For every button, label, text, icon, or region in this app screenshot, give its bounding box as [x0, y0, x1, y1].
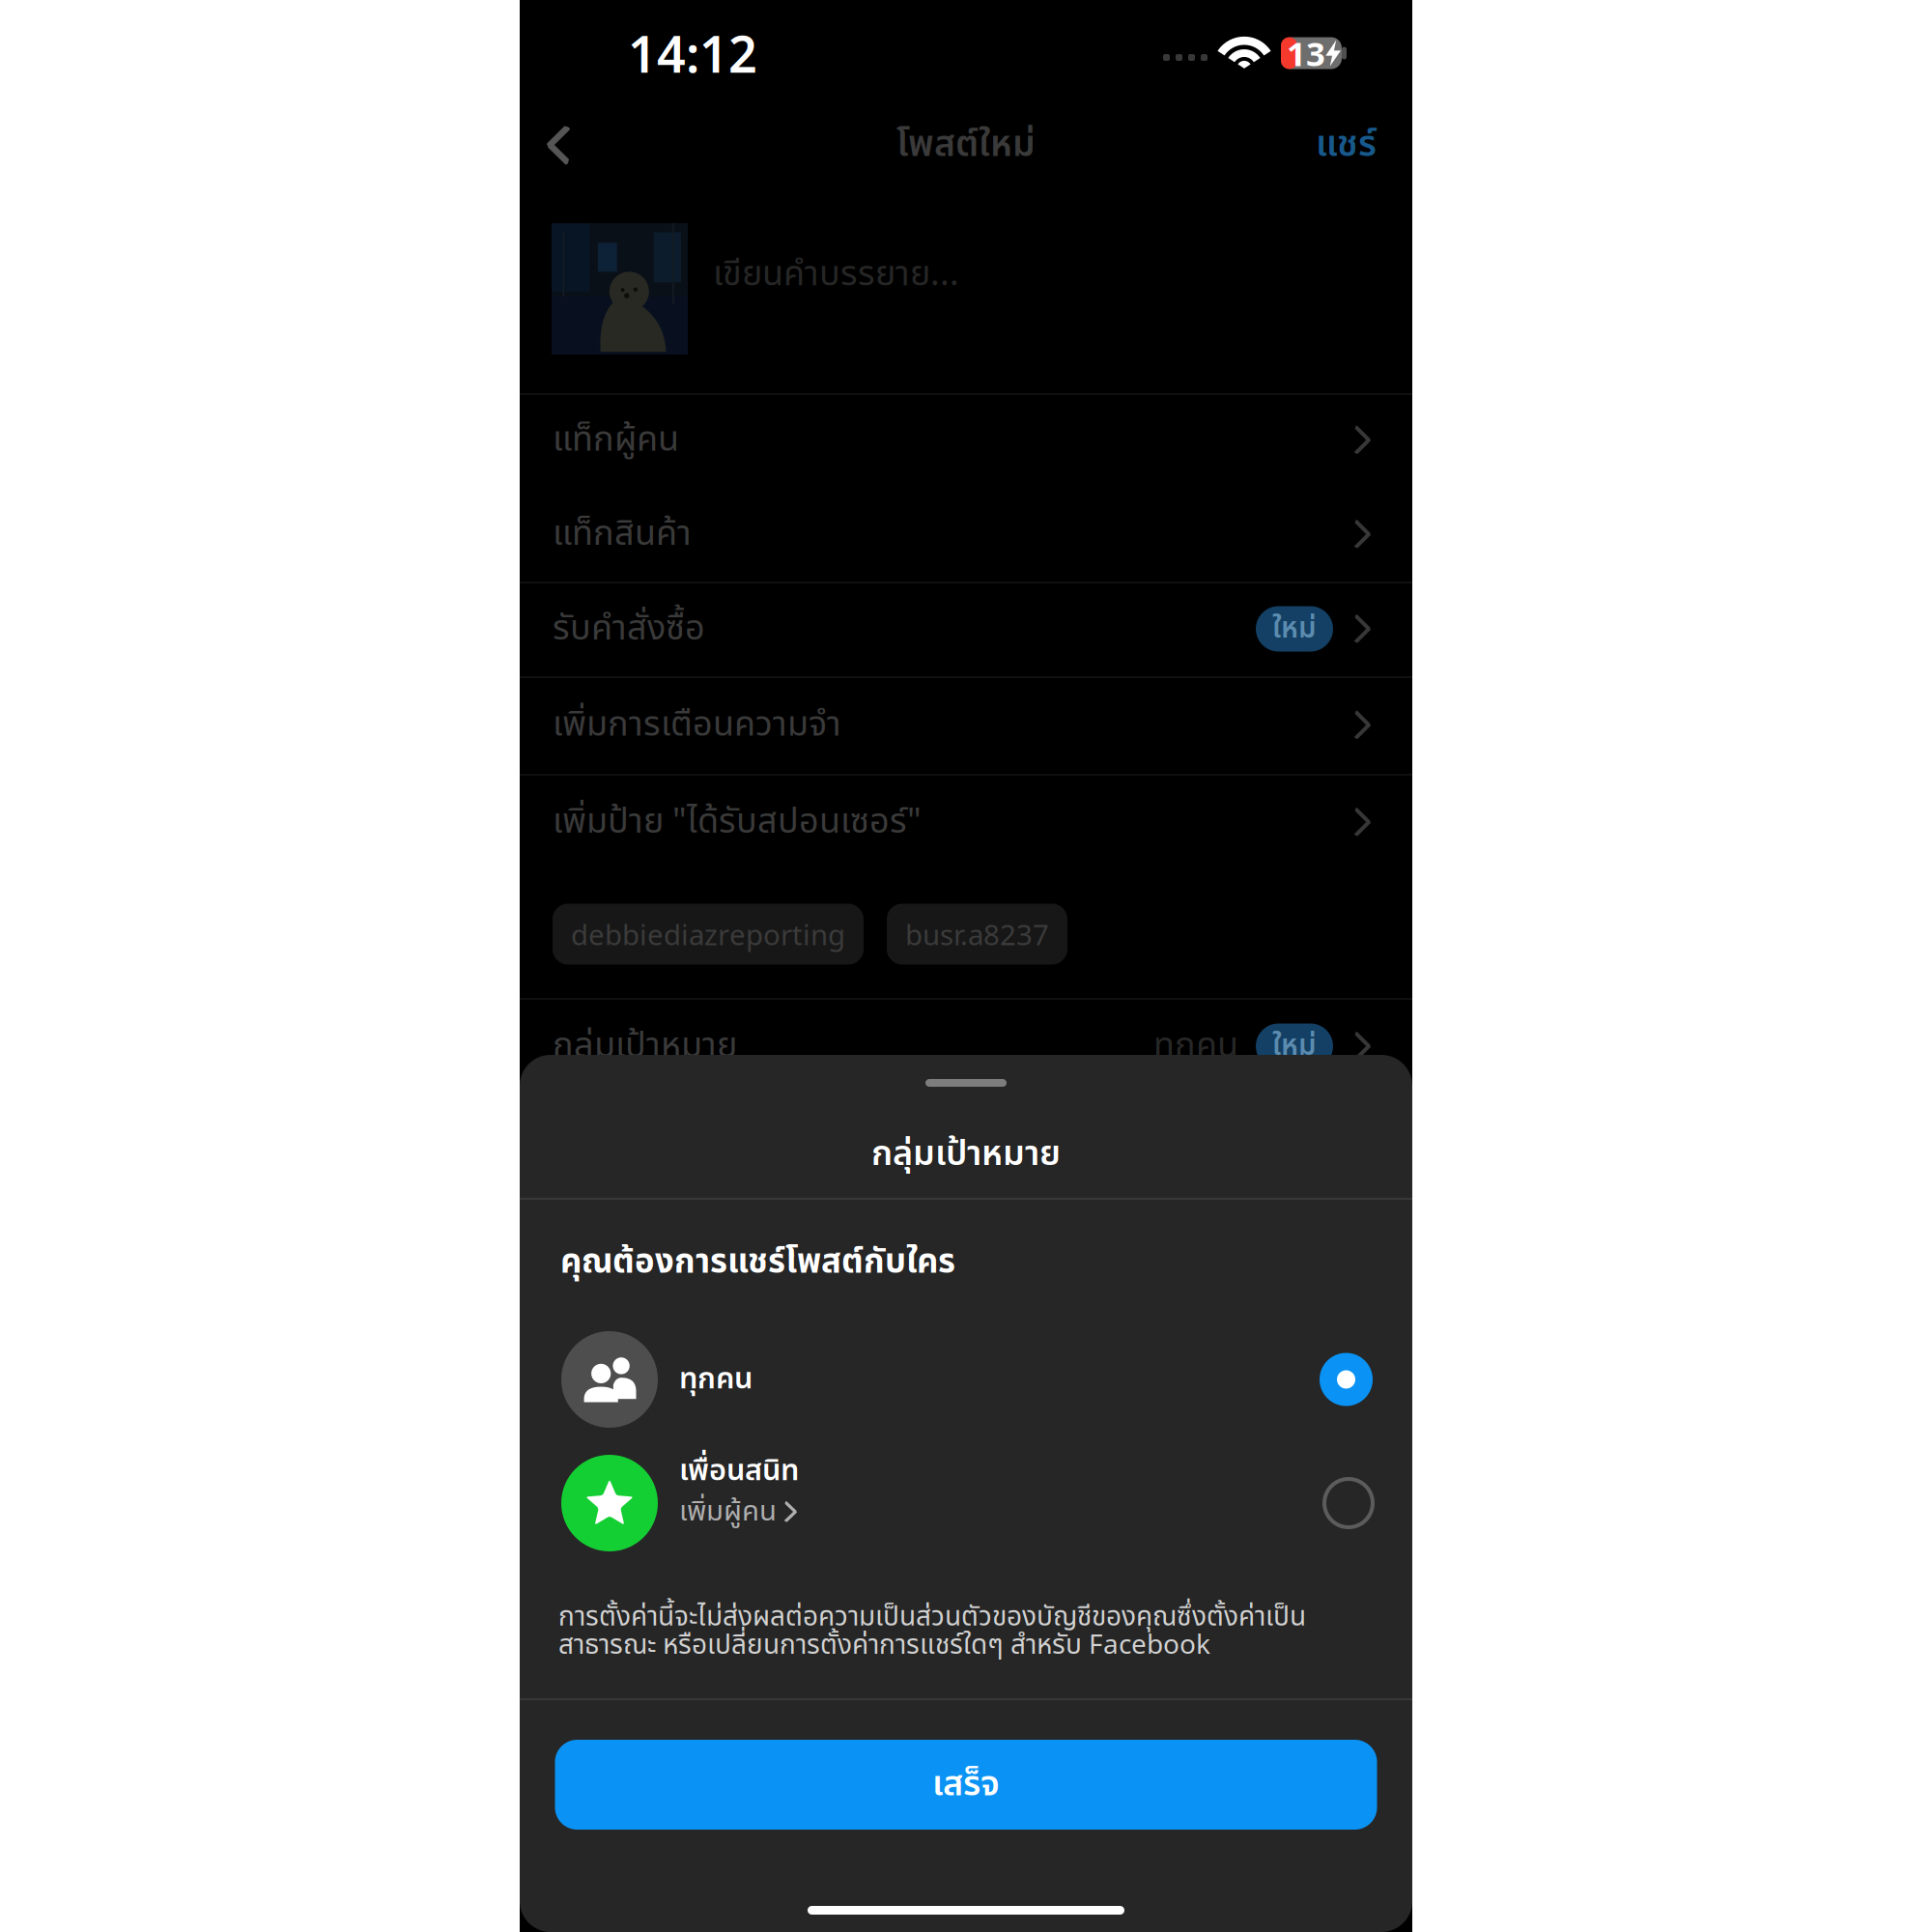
- button[interactable]: กลุ่มเป้าหมาย: [520, 998, 1412, 1094]
- staticText: เขียนคำบรรยาย...: [713, 248, 959, 301]
- button[interactable]: แท็กผู้คน: [520, 393, 1412, 487]
- staticText: กลุ่มเป้าหมาย: [553, 1020, 737, 1072]
- staticText: เพิ่มผู้คน: [679, 1490, 777, 1533]
- button[interactable]: busr.a8237: [887, 904, 1067, 965]
- button[interactable]: แชร์: [1291, 95, 1412, 195]
- button[interactable]: แท็กสินค้า: [520, 487, 1412, 582]
- staticText: 13: [1287, 31, 1325, 75]
- button[interactable]: เสร็จ: [555, 1740, 1377, 1830]
- button[interactable]: ทุกคน: [520, 1321, 1412, 1437]
- button[interactable]: เพิ่มการเตือนความจำ: [520, 676, 1412, 774]
- staticText: เสร็จ: [932, 1758, 1000, 1811]
- staticText: ใหม่: [1272, 607, 1317, 650]
- staticText: ทุกคน: [679, 1357, 753, 1402]
- staticText: ใหม่: [1272, 1025, 1317, 1068]
- button[interactable]: debbiediazreporting: [553, 904, 864, 965]
- button[interactable]: เพื่อนสนิท: [520, 1445, 1412, 1561]
- staticText: เพิ่มป้าย "ได้รับสปอนเซอร์": [553, 796, 922, 848]
- staticText: เพื่อนสนิท: [679, 1449, 799, 1494]
- staticText: 14:12: [628, 20, 757, 87]
- staticText: แท็กผู้คน: [553, 414, 679, 466]
- staticText: debbiediazreporting: [571, 915, 845, 953]
- staticText: โพสต์ใหม่: [896, 118, 1036, 172]
- staticText: แท็กสินค้า: [553, 508, 692, 560]
- staticText: busr.a8237: [905, 915, 1049, 953]
- staticText: ทุกคน: [1153, 1020, 1238, 1072]
- staticText: แชร์: [1316, 118, 1377, 172]
- staticText: คุณต้องการแชร์โพสต์กับใคร: [560, 1237, 955, 1288]
- staticText: เพิ่มการเตือนความจำ: [553, 699, 841, 751]
- button[interactable]: Back: [520, 95, 597, 195]
- staticText: การตั้งค่านี้จะไม่ส่งผลต่อความเป็นส่วนตั…: [558, 1597, 1306, 1666]
- button[interactable]: รับคำสั่งซื้อ: [520, 582, 1412, 676]
- staticText: รับคำสั่งซื้อ: [553, 603, 705, 655]
- button[interactable]: เพิ่มป้าย "ได้รับสปอนเซอร์": [520, 774, 1412, 870]
- staticText: กลุ่มเป้าหมาย: [871, 1128, 1061, 1181]
